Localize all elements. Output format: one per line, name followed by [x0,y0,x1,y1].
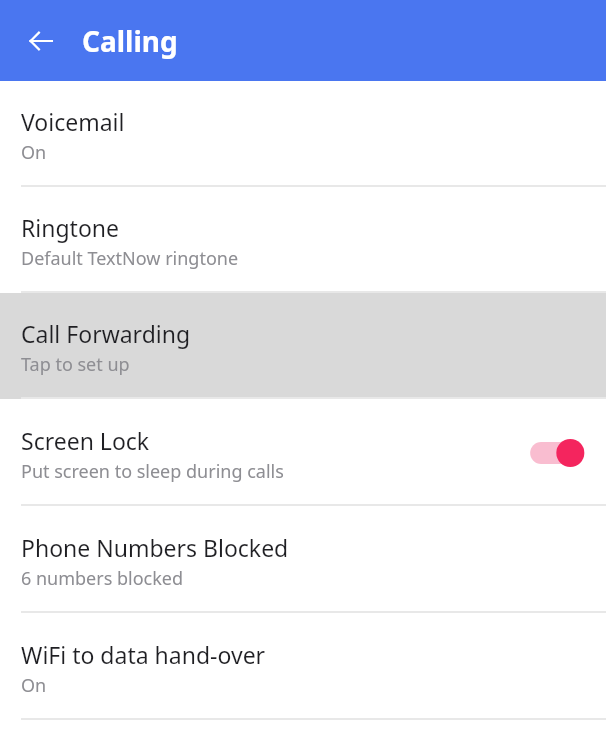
button[interactable]: Call Forwarding [0,293,606,399]
staticText: Phone Numbers Blocked [21,532,289,563]
button[interactable]: Phone Numbers Blocked [0,506,606,613]
button[interactable]: Back [14,14,68,68]
staticText: Put screen to sleep during calls [21,459,284,484]
staticText: Screen Lock [21,425,150,456]
button[interactable]: Voicemail [0,81,606,187]
staticText: WiFi to data hand-over [21,639,266,670]
button[interactable]: Screen Lock toggle [529,435,587,471]
staticText: Default TextNow ringtone [21,246,239,271]
button[interactable]: Ringtone [0,187,606,293]
button[interactable]: Screen Lock [0,399,606,506]
staticText: Ringtone [21,212,120,243]
staticText: Voicemail [21,106,125,137]
staticText: Call Forwarding [21,318,191,349]
staticText: Calling [82,22,178,60]
button[interactable]: WiFi to data hand-over [0,613,606,720]
staticText: Tap to set up [21,352,130,377]
staticText: On [21,673,47,698]
staticText: 6 numbers blocked [21,566,184,591]
staticText: On [21,140,47,165]
